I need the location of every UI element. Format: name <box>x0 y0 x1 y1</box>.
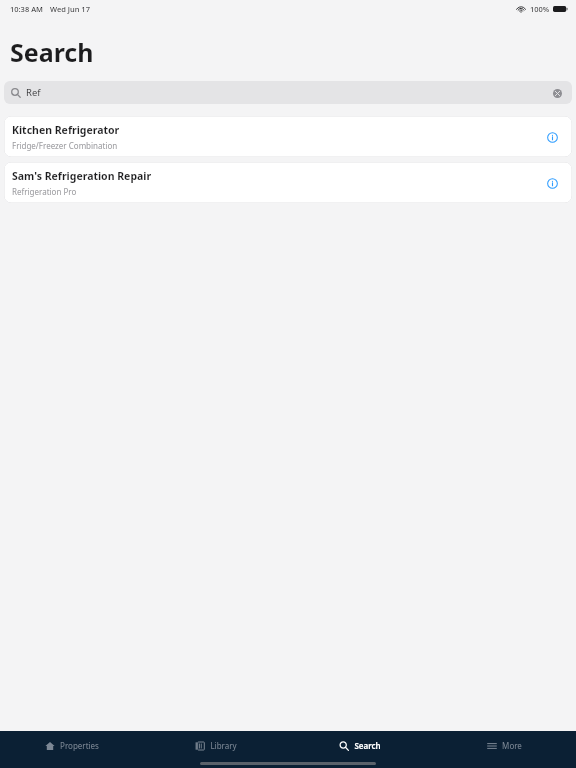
staticText: Fridge/Freezer Combination <box>12 140 118 151</box>
staticText: More <box>502 740 522 751</box>
staticText: Library <box>210 740 237 751</box>
staticText: Wed Jun 17 <box>50 4 90 14</box>
staticText: Search <box>354 740 381 751</box>
button[interactable]: Library <box>144 740 288 751</box>
staticText: Kitchen Refrigerator <box>12 123 120 137</box>
button[interactable]: More <box>432 740 576 751</box>
staticText: 100% <box>530 4 550 14</box>
staticText: Refrigeration Pro <box>12 186 77 197</box>
button[interactable]: Clear search <box>549 85 565 101</box>
staticText: Search <box>10 35 94 69</box>
button[interactable]: Kitchen Refrigerator <box>4 116 572 157</box>
staticText: 10:38 AM <box>10 4 43 14</box>
button[interactable]: Search <box>288 740 432 751</box>
button[interactable]: More information <box>542 127 562 147</box>
button[interactable]: Properties <box>0 740 144 751</box>
staticText: Sam's Refrigeration Repair <box>12 169 152 183</box>
button[interactable]: Sam's Refrigeration Repair <box>4 162 572 203</box>
button[interactable]: Ref <box>4 81 572 104</box>
button[interactable]: More information <box>542 173 562 193</box>
staticText: Properties <box>60 740 99 751</box>
staticText: Ref <box>26 86 41 99</box>
